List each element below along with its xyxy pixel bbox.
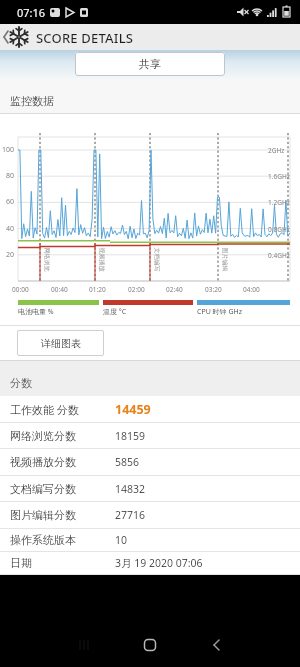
- staticText: 电池电量 %: [18, 307, 54, 317]
- staticText: 14832: [115, 482, 146, 496]
- button[interactable]: [138, 633, 162, 657]
- staticText: 1.2GHz: [268, 198, 290, 207]
- staticText: 01:20: [89, 285, 106, 294]
- button[interactable]: 共享: [75, 52, 225, 76]
- staticText: 40: [6, 224, 15, 234]
- staticText: 04:00: [243, 285, 260, 294]
- staticText: 100: [2, 145, 15, 155]
- staticText: 02:00: [128, 285, 145, 294]
- button[interactable]: [0, 24, 14, 50]
- button[interactable]: 图片编辑分数: [0, 502, 300, 529]
- staticText: 3月 19 2020 07:06: [115, 556, 203, 570]
- staticText: 27716: [115, 508, 146, 522]
- button[interactable]: 日期: [0, 552, 300, 575]
- staticText: 文档编写分数: [10, 482, 76, 496]
- staticText: 监控数据: [10, 94, 54, 108]
- staticText: 视频播放分数: [10, 455, 76, 469]
- staticText: 操作系统版本: [10, 533, 76, 547]
- staticText: 共享: [139, 57, 161, 71]
- staticText: 视频播放: [97, 247, 105, 271]
- staticText: 00:00: [12, 285, 29, 294]
- button[interactable]: [204, 633, 228, 657]
- button[interactable]: 操作系统版本: [0, 529, 300, 552]
- button[interactable]: 视频播放分数: [0, 449, 300, 476]
- staticText: 图片编辑分数: [10, 508, 76, 522]
- staticText: 温度 °C: [103, 307, 127, 317]
- button[interactable]: 文档编写分数: [0, 476, 300, 502]
- staticText: 详细图表: [41, 337, 81, 350]
- staticText: 分数: [10, 376, 32, 390]
- staticText: CPU 时钟 GHz: [197, 307, 242, 317]
- staticText: 02:40: [166, 285, 183, 294]
- button[interactable]: 工作效能 分数: [0, 396, 300, 423]
- staticText: 日期: [10, 556, 32, 570]
- staticText: 18159: [115, 429, 146, 443]
- staticText: 工作效能 分数: [10, 402, 79, 417]
- staticText: 文档编写: [152, 247, 160, 271]
- staticText: 03:20: [205, 285, 222, 294]
- staticText: 5856: [115, 455, 140, 469]
- staticText: 2GHz: [268, 146, 285, 155]
- staticText: 14459: [115, 401, 151, 418]
- button[interactable]: 网络浏览分数: [0, 423, 300, 449]
- staticText: 07:16: [17, 5, 46, 20]
- staticText: 10: [115, 533, 128, 547]
- staticText: 00:40: [51, 285, 68, 294]
- staticText: 0.8GHz: [268, 225, 290, 234]
- staticText: 1.6GHz: [268, 172, 290, 181]
- staticText: 80: [6, 171, 15, 181]
- button[interactable]: 详细图表: [17, 330, 104, 356]
- staticText: 0.4GHz: [268, 251, 290, 260]
- button[interactable]: [72, 633, 96, 657]
- staticText: 图片编辑: [220, 247, 228, 271]
- staticText: 60: [6, 197, 15, 207]
- staticText: SCORE DETAILS: [36, 29, 134, 47]
- staticText: 网络浏览: [42, 247, 50, 271]
- staticText: 网络浏览分数: [10, 429, 76, 443]
- staticText: 20: [6, 250, 15, 260]
